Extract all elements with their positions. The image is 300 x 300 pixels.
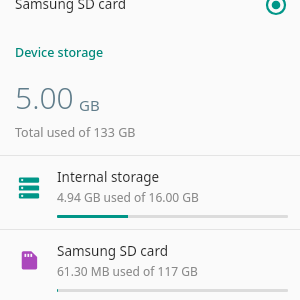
button[interactable]: Internal storage [0,156,300,229]
staticText: GB [79,95,100,115]
other: SD card [18,249,40,271]
staticText: Device storage [15,44,104,61]
staticText: Samsung SD card [15,0,127,13]
button[interactable]: Samsung SD card [0,0,300,22]
button[interactable]: SD card [0,230,300,300]
staticText: 61.30 MB used of 117 GB [57,263,198,279]
staticText: Total used of 133 GB [15,124,136,141]
staticText: Samsung SD card [57,242,169,260]
staticText: 4.94 GB used of 16.00 GB [57,189,199,205]
other: Internal storage [18,177,40,199]
staticText: Internal storage [57,168,160,186]
staticText: 5.00 [15,77,74,118]
